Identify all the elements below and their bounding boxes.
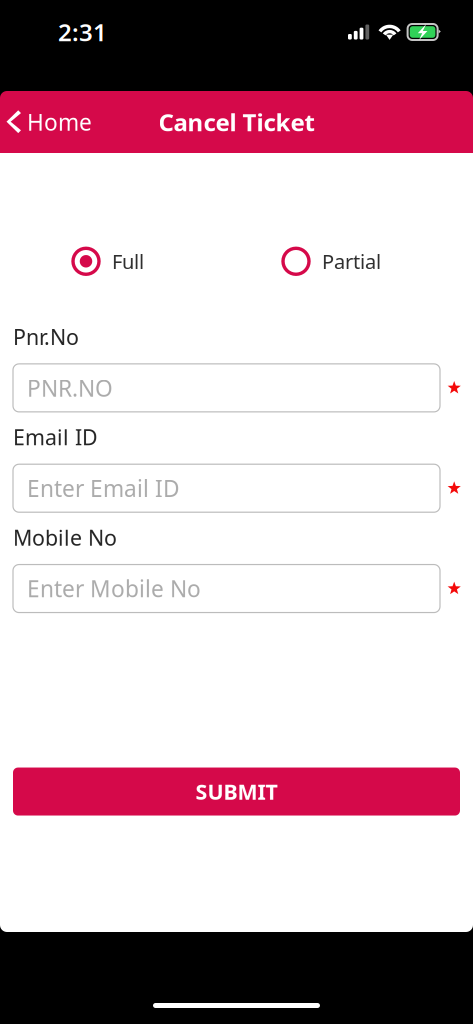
button[interactable]: Enter Mobile No: [13, 564, 440, 612]
staticText: Partial: [322, 248, 381, 275]
staticText: 2:31: [58, 16, 107, 48]
staticText: Cancel Ticket: [158, 106, 314, 138]
staticText: SUBMIT: [195, 777, 277, 806]
staticText: Enter Email ID: [27, 473, 180, 503]
button[interactable]: Partial: [283, 248, 381, 275]
staticText: Enter Mobile No: [27, 573, 201, 604]
button[interactable]: PNR.NO: [13, 364, 440, 412]
button[interactable]: SUBMIT: [13, 767, 460, 815]
button[interactable]: Home: [0, 91, 106, 153]
staticText: Pnr.No: [13, 323, 79, 351]
staticText: PNR.NO: [27, 373, 113, 403]
staticText: Email ID: [13, 423, 98, 451]
staticText: Mobile No: [13, 523, 117, 551]
staticText: Home: [27, 107, 92, 137]
button[interactable]: Full: [73, 248, 144, 275]
button[interactable]: Enter Email ID: [13, 464, 440, 512]
staticText: Full: [112, 248, 144, 275]
